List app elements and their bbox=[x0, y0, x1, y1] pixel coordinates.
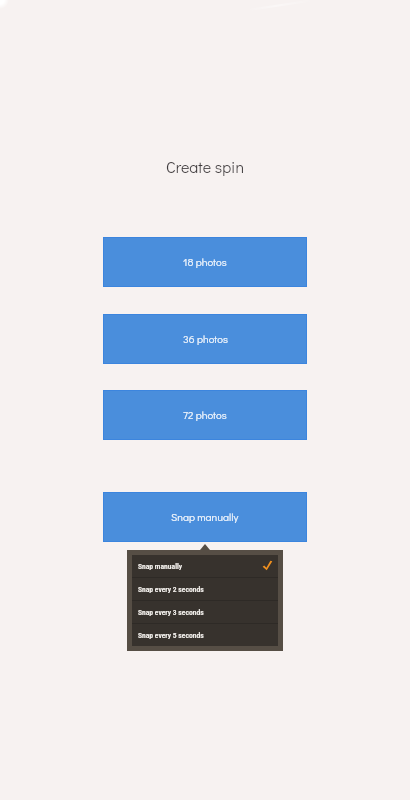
button[interactable]: Snap every 2 seconds bbox=[132, 578, 278, 600]
staticText: 18 photos bbox=[183, 255, 227, 269]
button[interactable]: Snap manually bbox=[103, 492, 307, 542]
staticText: Snap every 3 seconds bbox=[138, 608, 204, 617]
staticText: Create spin bbox=[0, 156, 410, 177]
staticText: Snap manually bbox=[171, 510, 239, 524]
button[interactable]: Snap manually bbox=[132, 555, 278, 577]
button[interactable]: Snap every 5 seconds bbox=[132, 624, 278, 646]
button[interactable]: Snap every 3 seconds bbox=[132, 601, 278, 623]
staticText: Snap every 2 seconds bbox=[138, 585, 204, 594]
staticText: Snap manually bbox=[138, 562, 183, 571]
staticText: Snap every 5 seconds bbox=[138, 631, 204, 640]
staticText: 72 photos bbox=[183, 408, 227, 422]
other: Selected bbox=[262, 560, 273, 571]
button[interactable]: 36 photos bbox=[103, 314, 307, 364]
button[interactable]: 18 photos bbox=[103, 237, 307, 287]
button[interactable]: 72 photos bbox=[103, 390, 307, 440]
staticText: 36 photos bbox=[183, 332, 228, 346]
